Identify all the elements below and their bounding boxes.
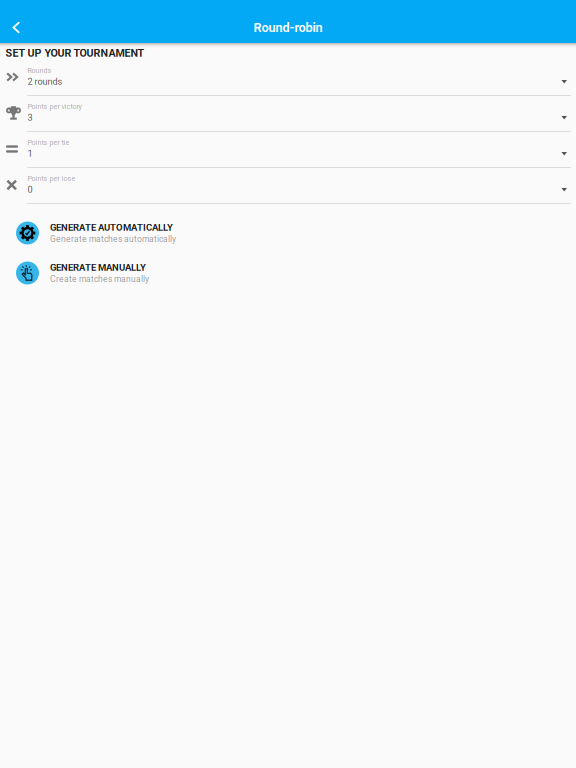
staticText: Points per victory: [27, 102, 81, 111]
staticText: GENERATE AUTOMATICALLY: [50, 222, 173, 233]
staticText: 3: [27, 112, 32, 123]
staticText: 1: [27, 148, 32, 159]
staticText: Points per lose: [27, 174, 75, 183]
button[interactable]: Points per lose: [0, 168, 576, 204]
staticText: Generate matches automatically: [50, 234, 176, 244]
button[interactable]: Points per victory: [0, 96, 576, 132]
staticText: SET UP YOUR TOURNAMENT: [5, 47, 144, 59]
staticText: Create matches manually: [50, 274, 149, 284]
staticText: Rounds: [27, 66, 51, 75]
staticText: Points per tie: [27, 138, 69, 147]
button[interactable]: GENERATE MANUALLY: [0, 253, 576, 293]
staticText: Round-robin: [253, 20, 322, 35]
staticText: 0: [27, 184, 32, 195]
staticText: GENERATE MANUALLY: [50, 262, 146, 273]
button[interactable]: Rounds: [0, 60, 576, 96]
button[interactable]: GENERATE AUTOMATICALLY: [0, 213, 576, 253]
staticText: 2 rounds: [27, 76, 62, 87]
button[interactable]: Points per tie: [0, 132, 576, 168]
button[interactable]: Back: [0, 12, 33, 43]
